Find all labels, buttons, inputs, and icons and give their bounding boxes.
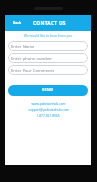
staticText: support@pakistanhub.com [28,108,69,112]
staticText: Enter Your Comments [11,68,55,73]
button[interactable]: Enter Your Comments [8,65,88,75]
button[interactable]: Enter phone number [8,53,88,63]
staticText: Enter Name [11,44,35,49]
button[interactable]: Enter Name [8,41,88,51]
staticText: CONTACT US [33,20,66,27]
staticText: Enter phone number [11,56,53,61]
staticText: We would like to hear from you [5,33,91,37]
button[interactable]: Back [5,17,28,29]
staticText: www.pakistanhub.com [31,102,66,106]
button[interactable]: support@pakistanhub.com [5,108,91,112]
button[interactable]: SEND [8,85,88,96]
staticText: SEND [42,87,54,92]
button[interactable]: 1-877-921-8965 [5,114,91,118]
staticText: 1-877-921-8965 [36,114,60,118]
button[interactable]: www.pakistanhub.com [5,102,91,106]
staticText: Back [13,20,22,25]
